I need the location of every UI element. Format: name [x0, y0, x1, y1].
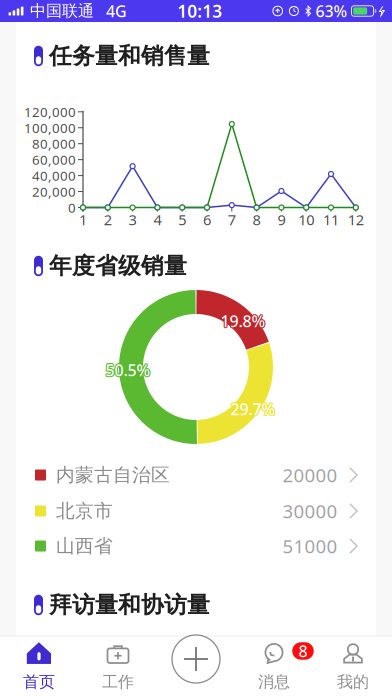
- staticText: 19.8%: [219, 310, 264, 332]
- staticText: 0: [68, 199, 76, 216]
- staticText: 12: [348, 210, 364, 229]
- staticText: 消息: [258, 672, 290, 692]
- staticText: 50.5%: [106, 360, 151, 381]
- staticText: 7: [228, 210, 236, 229]
- staticText: 29.7%: [230, 398, 275, 419]
- staticText: 6: [203, 210, 211, 229]
- staticText: 任务量和销售量: [49, 42, 210, 70]
- staticText: 120,000: [24, 103, 76, 121]
- staticText: 50.5%: [105, 358, 150, 380]
- staticText: 首页: [23, 672, 55, 692]
- staticText: 30000: [283, 499, 338, 523]
- staticText: 中国联通: [25, 1, 94, 21]
- staticText: 19.8%: [220, 310, 265, 332]
- button[interactable]: 内蒙古自治区: [0, 457, 392, 493]
- staticText: 2: [104, 210, 112, 229]
- staticText: 100,000: [24, 119, 76, 137]
- staticText: 19.8%: [220, 309, 265, 331]
- staticText: 60,000: [32, 151, 76, 168]
- staticText: 29.7%: [230, 399, 275, 420]
- staticText: 5: [178, 210, 186, 229]
- staticText: 年度省级销量: [49, 252, 187, 280]
- staticText: 4: [153, 210, 161, 229]
- staticText: 19.8%: [220, 311, 265, 332]
- staticText: 50.5%: [106, 359, 151, 381]
- staticText: 10: [298, 210, 314, 229]
- staticText: 19.8%: [221, 310, 266, 332]
- staticText: 4G: [94, 0, 127, 22]
- staticText: 11: [323, 210, 339, 229]
- staticText: 19.8%: [220, 310, 265, 331]
- staticText: 内蒙古自治区: [56, 463, 170, 486]
- staticText: 拜访量和协访量: [49, 591, 210, 619]
- staticText: 10:13: [177, 0, 222, 22]
- staticText: 8: [298, 640, 307, 662]
- button[interactable]: 北京市: [0, 493, 392, 529]
- staticText: 9: [277, 210, 285, 229]
- button[interactable]: 山西省: [0, 528, 392, 564]
- button[interactable]: 工作: [78, 636, 158, 696]
- staticText: 50.5%: [104, 359, 149, 381]
- staticText: 29.7%: [231, 399, 276, 420]
- button[interactable]: 新建: [168, 631, 224, 687]
- staticText: 40,000: [32, 167, 76, 184]
- button[interactable]: 我的: [313, 636, 392, 696]
- staticText: 3: [129, 210, 137, 229]
- staticText: 80,000: [32, 135, 76, 152]
- staticText: 北京市: [56, 499, 113, 522]
- staticText: 19.8%: [221, 311, 266, 332]
- staticText: 20,000: [32, 183, 76, 200]
- staticText: 29.7%: [231, 398, 276, 419]
- staticText: 29.7%: [229, 398, 274, 420]
- staticText: 63%: [311, 0, 351, 22]
- staticText: 50.5%: [106, 359, 151, 380]
- staticText: 50.5%: [105, 359, 150, 381]
- staticText: 19.8%: [221, 310, 266, 331]
- staticText: 山西省: [56, 534, 113, 557]
- staticText: 50.5%: [105, 360, 150, 382]
- button[interactable]: 首页: [0, 636, 79, 696]
- staticText: 29.7%: [230, 399, 275, 421]
- staticText: 19.8%: [220, 311, 265, 333]
- staticText: 1: [79, 210, 87, 229]
- staticText: 20000: [283, 463, 338, 487]
- button[interactable]: 消息: [234, 636, 314, 696]
- staticText: 50.5%: [105, 359, 150, 380]
- staticText: 工作: [102, 672, 134, 692]
- staticText: 29.7%: [231, 398, 276, 420]
- staticText: 29.7%: [230, 398, 275, 420]
- staticText: 50.5%: [105, 360, 150, 381]
- staticText: 29.7%: [230, 397, 275, 419]
- staticText: 8: [253, 210, 261, 229]
- staticText: 我的: [337, 672, 369, 692]
- staticText: 51000: [283, 534, 338, 558]
